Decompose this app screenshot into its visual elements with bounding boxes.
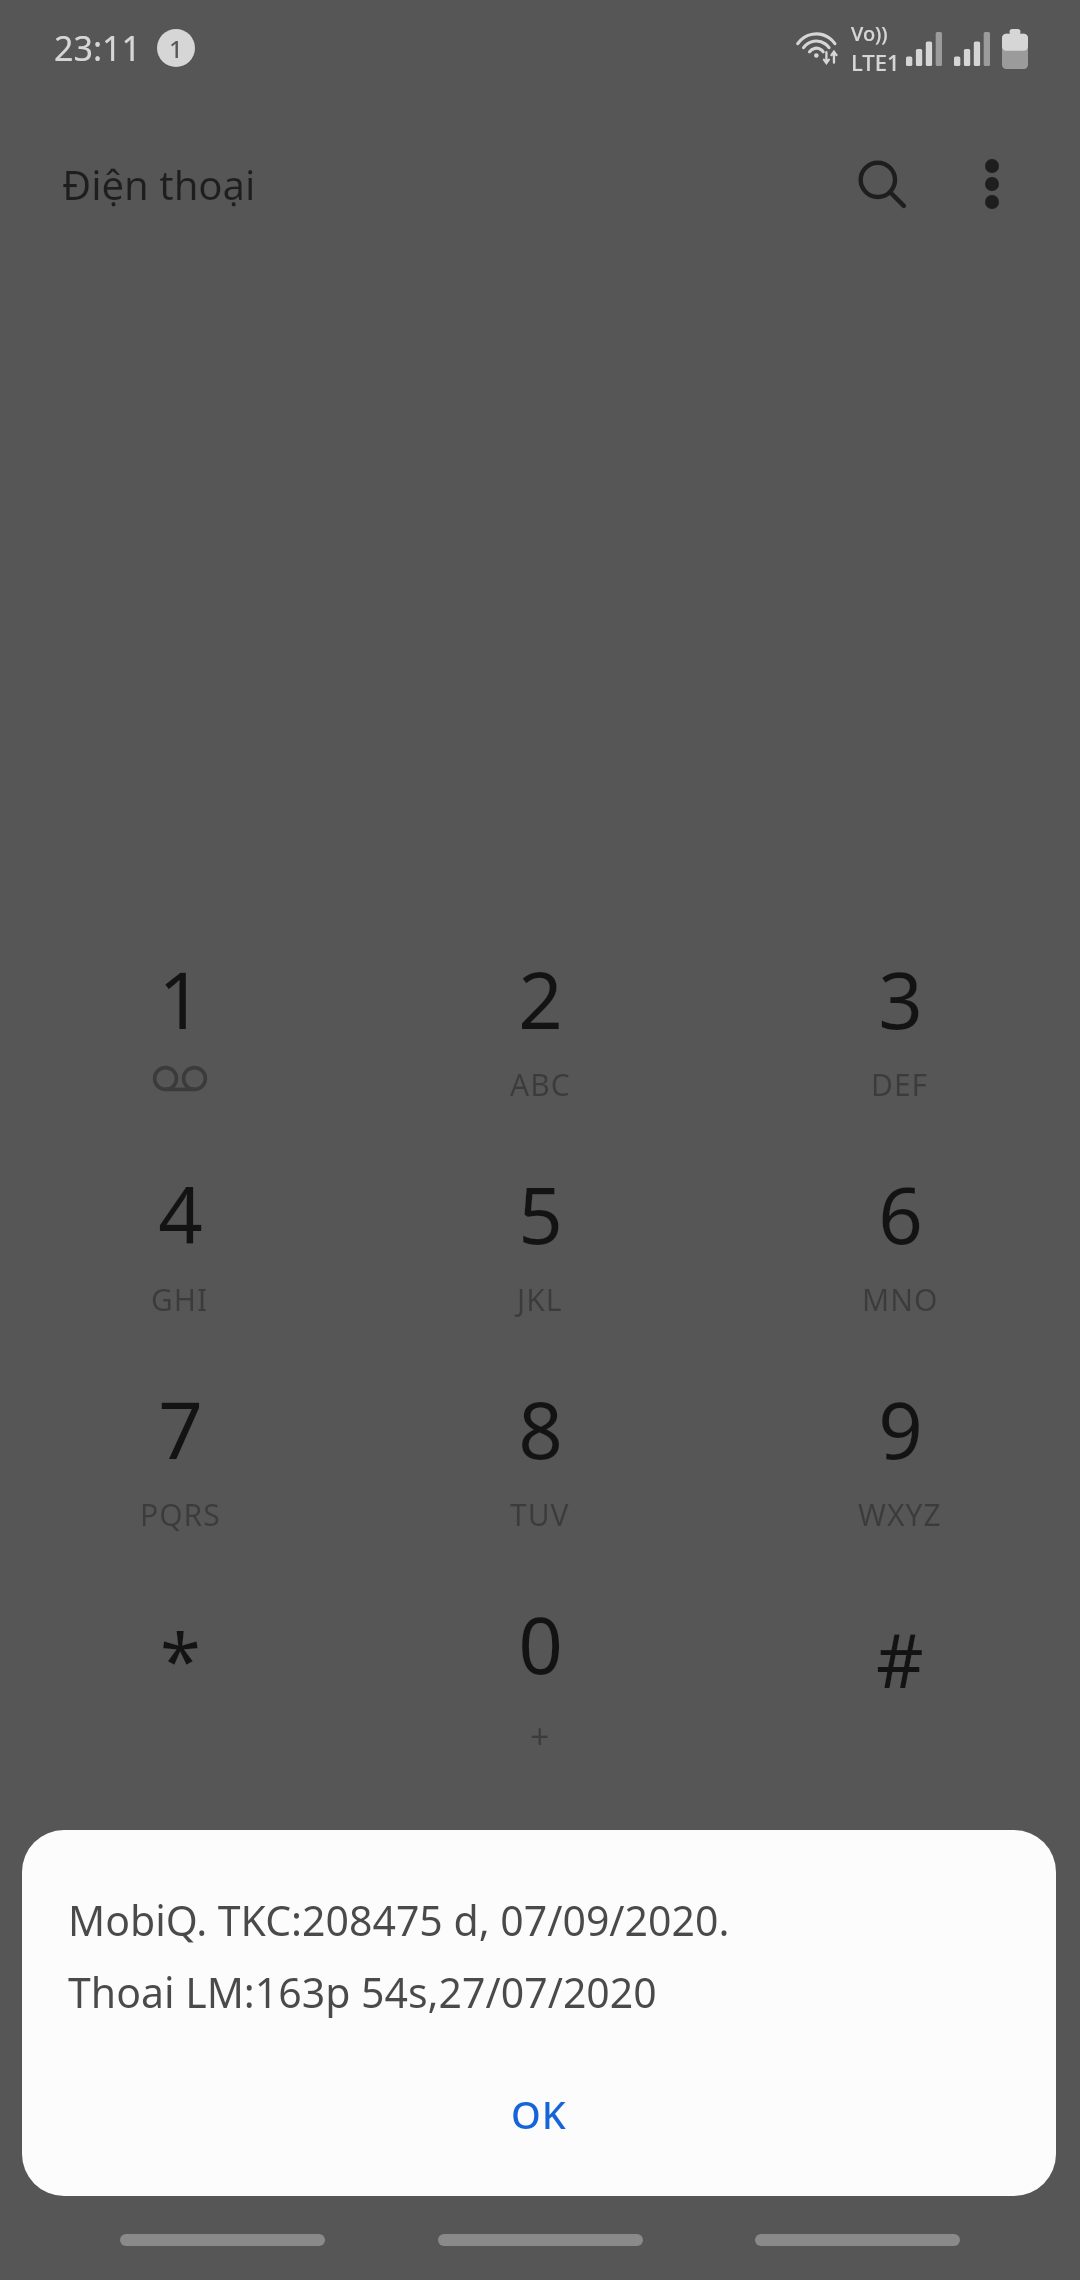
staticText: 9 bbox=[878, 1376, 923, 1482]
staticText: 3 bbox=[878, 946, 923, 1052]
button[interactable]: 5 bbox=[360, 1155, 720, 1370]
button[interactable]: Recents bbox=[120, 2218, 325, 2262]
button[interactable]: 0 bbox=[360, 1585, 720, 1800]
staticText: Vo)) bbox=[851, 20, 888, 47]
staticText: Thoai LM:163p 54s,27/07/2020 bbox=[68, 1964, 657, 2020]
staticText: * bbox=[160, 1609, 201, 1710]
staticText: MobiQ. TKC:208475 d, 07/09/2020. bbox=[68, 1892, 730, 1948]
staticText: 0 bbox=[518, 1591, 563, 1697]
staticText: JKL bbox=[517, 1279, 563, 1320]
staticText: 23:11 bbox=[54, 25, 141, 71]
staticText: # bbox=[876, 1609, 924, 1710]
button[interactable]: * bbox=[0, 1585, 360, 1800]
staticText: Điện thoại bbox=[62, 157, 256, 211]
staticText: 4 bbox=[158, 1161, 203, 1267]
button[interactable]: More options bbox=[944, 136, 1040, 232]
staticText: 6 bbox=[878, 1161, 923, 1267]
staticText: 1 bbox=[158, 946, 203, 1052]
staticText: 1 bbox=[169, 32, 183, 65]
button[interactable]: 4 bbox=[0, 1155, 360, 1370]
button[interactable]: Back bbox=[755, 2218, 960, 2262]
staticText: 2 bbox=[518, 946, 563, 1052]
button[interactable]: Home bbox=[438, 2218, 643, 2262]
staticText: GHI bbox=[151, 1279, 209, 1320]
button[interactable]: 1 bbox=[0, 940, 360, 1155]
staticText: + bbox=[530, 1713, 551, 1759]
button[interactable]: 9 bbox=[720, 1370, 1080, 1585]
button[interactable]: 3 bbox=[720, 940, 1080, 1155]
staticText: OK bbox=[511, 2088, 567, 2140]
button[interactable]: 2 bbox=[360, 940, 720, 1155]
button[interactable]: Search bbox=[834, 136, 930, 232]
staticText: 5 bbox=[518, 1161, 563, 1267]
button[interactable]: 7 bbox=[0, 1370, 360, 1585]
button[interactable]: 6 bbox=[720, 1155, 1080, 1370]
button[interactable]: # bbox=[720, 1585, 1080, 1800]
staticText: 7 bbox=[158, 1376, 203, 1482]
staticText: TUV bbox=[510, 1494, 570, 1535]
button[interactable]: OK bbox=[471, 2074, 607, 2154]
staticText: DEF bbox=[871, 1064, 929, 1105]
staticText: LTE1 bbox=[851, 47, 900, 77]
button[interactable]: 8 bbox=[360, 1370, 720, 1585]
staticText: 8 bbox=[518, 1376, 563, 1482]
staticText: WXYZ bbox=[858, 1494, 942, 1535]
staticText: MNO bbox=[862, 1279, 939, 1320]
staticText: PQRS bbox=[140, 1494, 221, 1535]
staticText: ABC bbox=[510, 1064, 571, 1105]
